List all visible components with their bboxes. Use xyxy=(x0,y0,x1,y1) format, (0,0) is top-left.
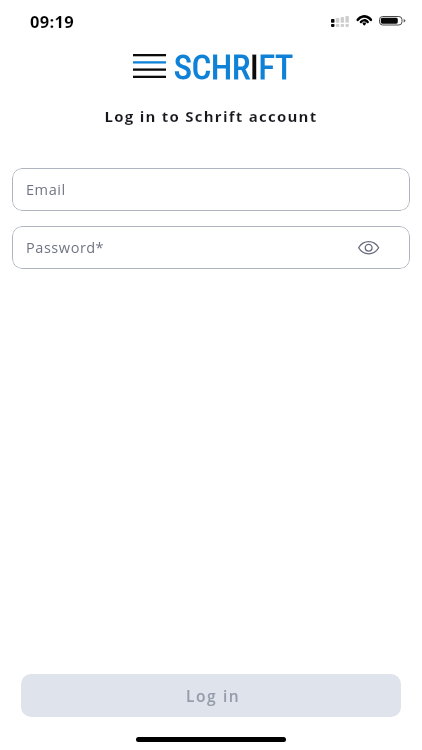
button[interactable]: Password* xyxy=(12,226,410,269)
staticText: Log in to Schrift account xyxy=(0,106,422,126)
staticText: Email xyxy=(26,180,66,200)
button[interactable]: Email xyxy=(12,168,410,211)
other: Schrift logo xyxy=(133,54,166,78)
button[interactable]: Log in xyxy=(21,674,401,717)
staticText: SCHRIFT xyxy=(174,47,293,87)
button[interactable]: Show password xyxy=(356,235,382,261)
staticText: Log in xyxy=(186,685,241,706)
staticText: Password* xyxy=(26,238,105,258)
staticText: 09:19 xyxy=(30,10,74,32)
